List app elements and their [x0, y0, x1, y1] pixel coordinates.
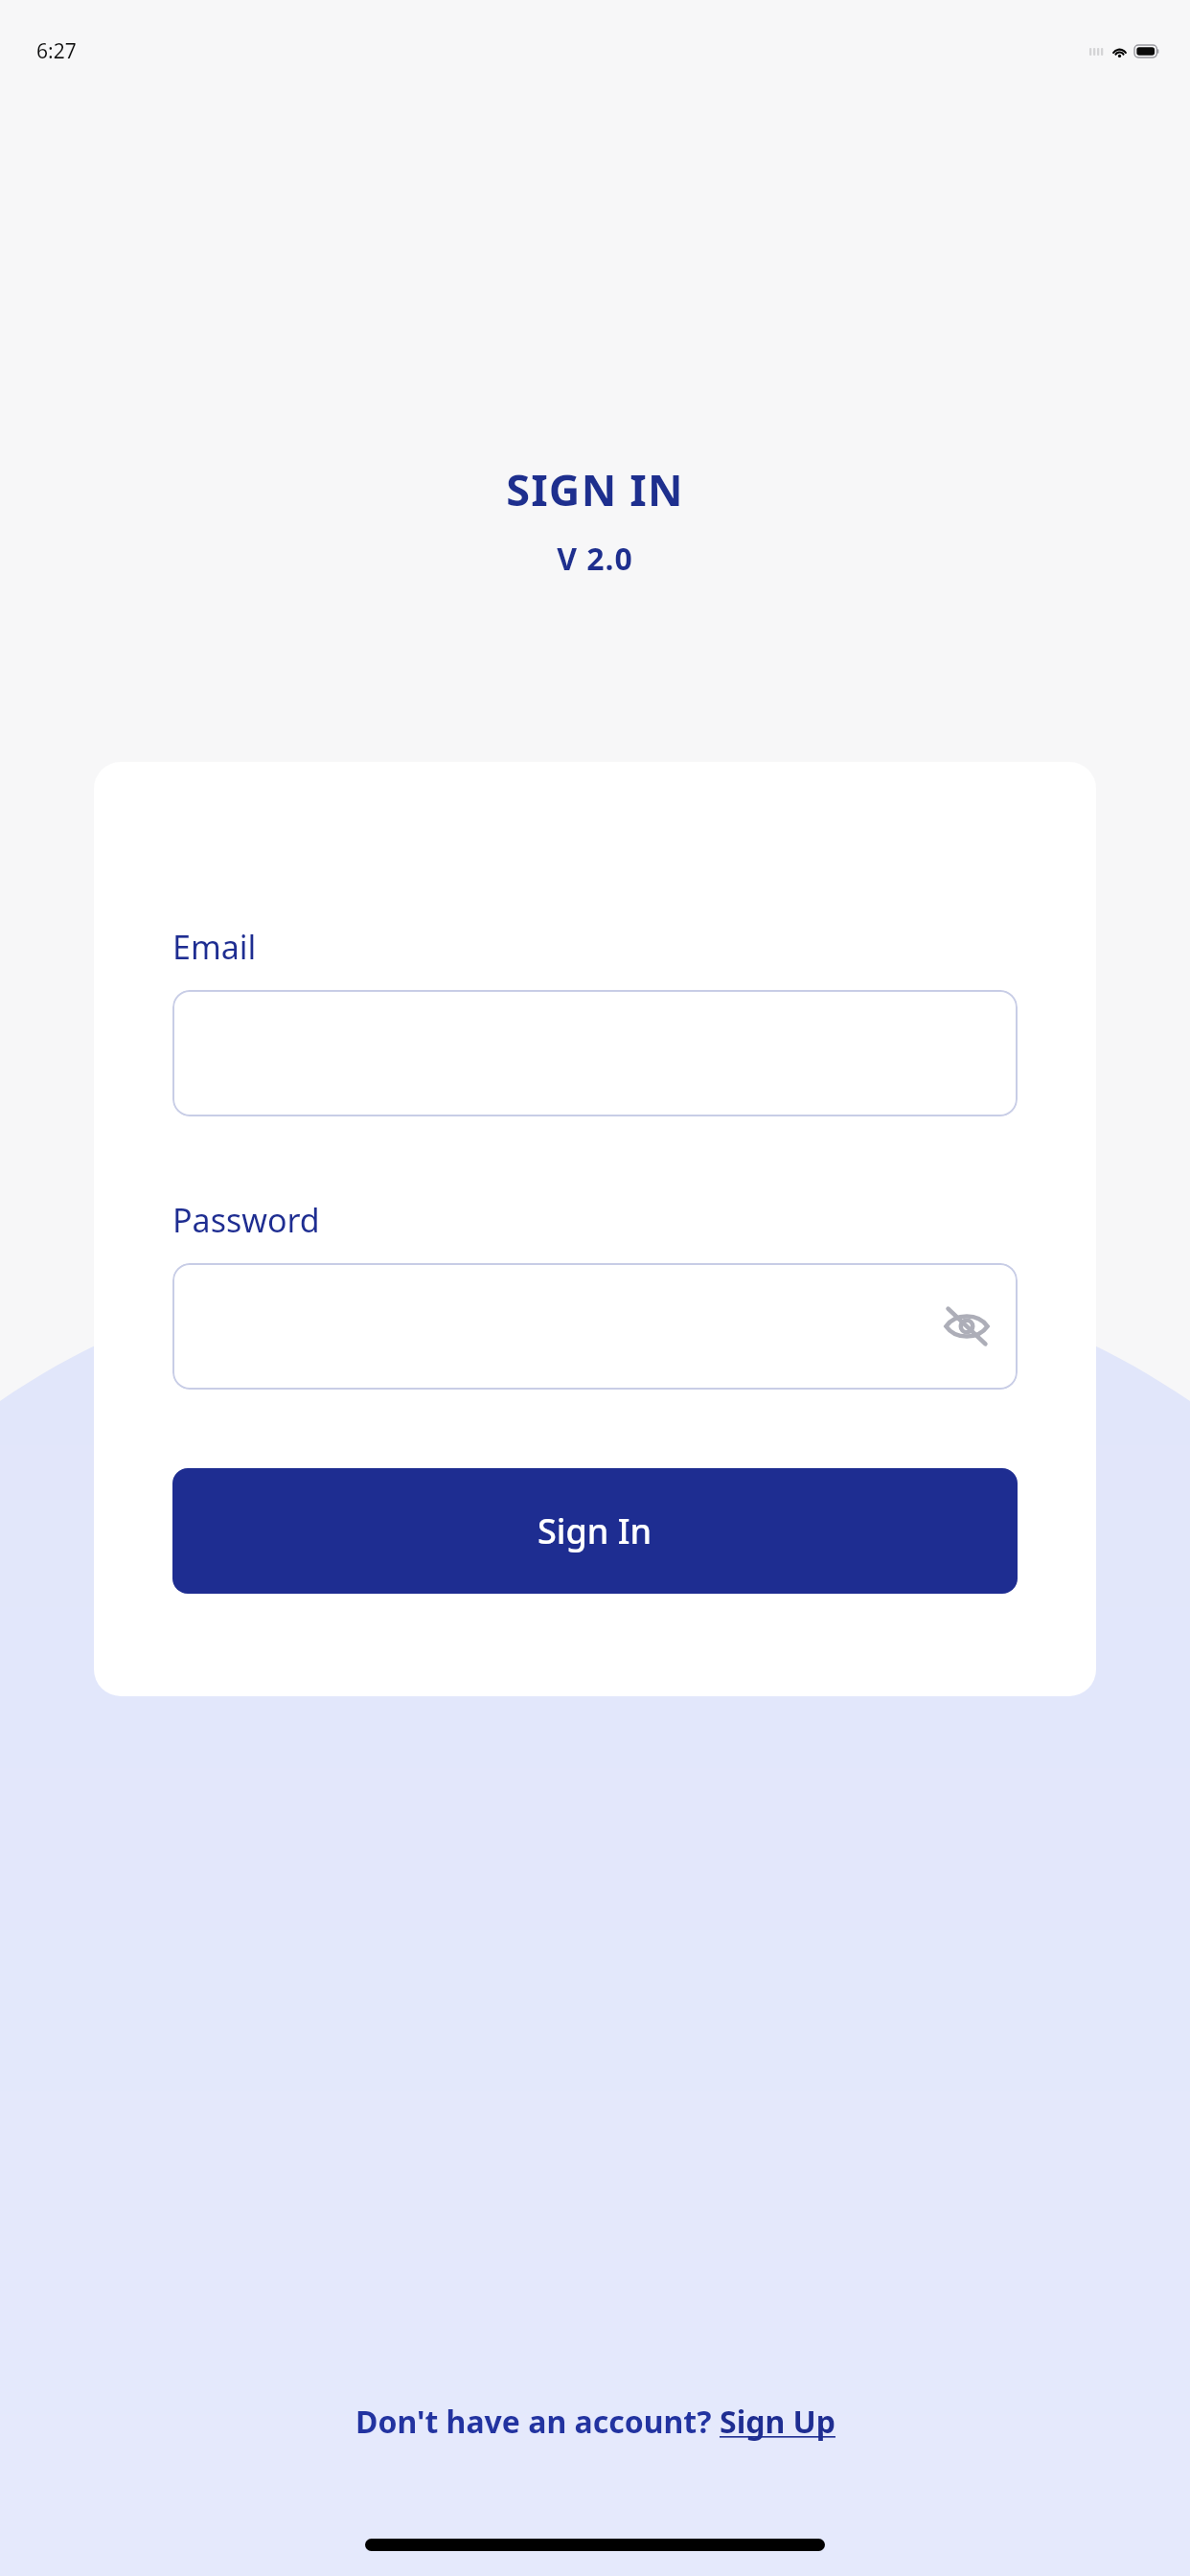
button[interactable]: Toggle password visibility — [172, 1263, 1018, 1390]
staticText: Sign Up — [720, 2401, 835, 2443]
staticText: Sign In — [538, 1507, 652, 1554]
staticText: 6:27 — [36, 37, 77, 65]
staticText: Password — [172, 1198, 320, 1242]
staticText: SIGN IN — [506, 460, 684, 518]
button[interactable]: Don't have an account? — [355, 2401, 835, 2443]
staticText: V 2.0 — [557, 538, 633, 580]
button[interactable]: Toggle password visibility — [937, 1297, 996, 1356]
button[interactable] — [172, 990, 1018, 1116]
staticText: Don't have an account? — [355, 2401, 720, 2443]
staticText: Email — [172, 925, 257, 969]
button[interactable]: Sign In — [172, 1468, 1018, 1594]
